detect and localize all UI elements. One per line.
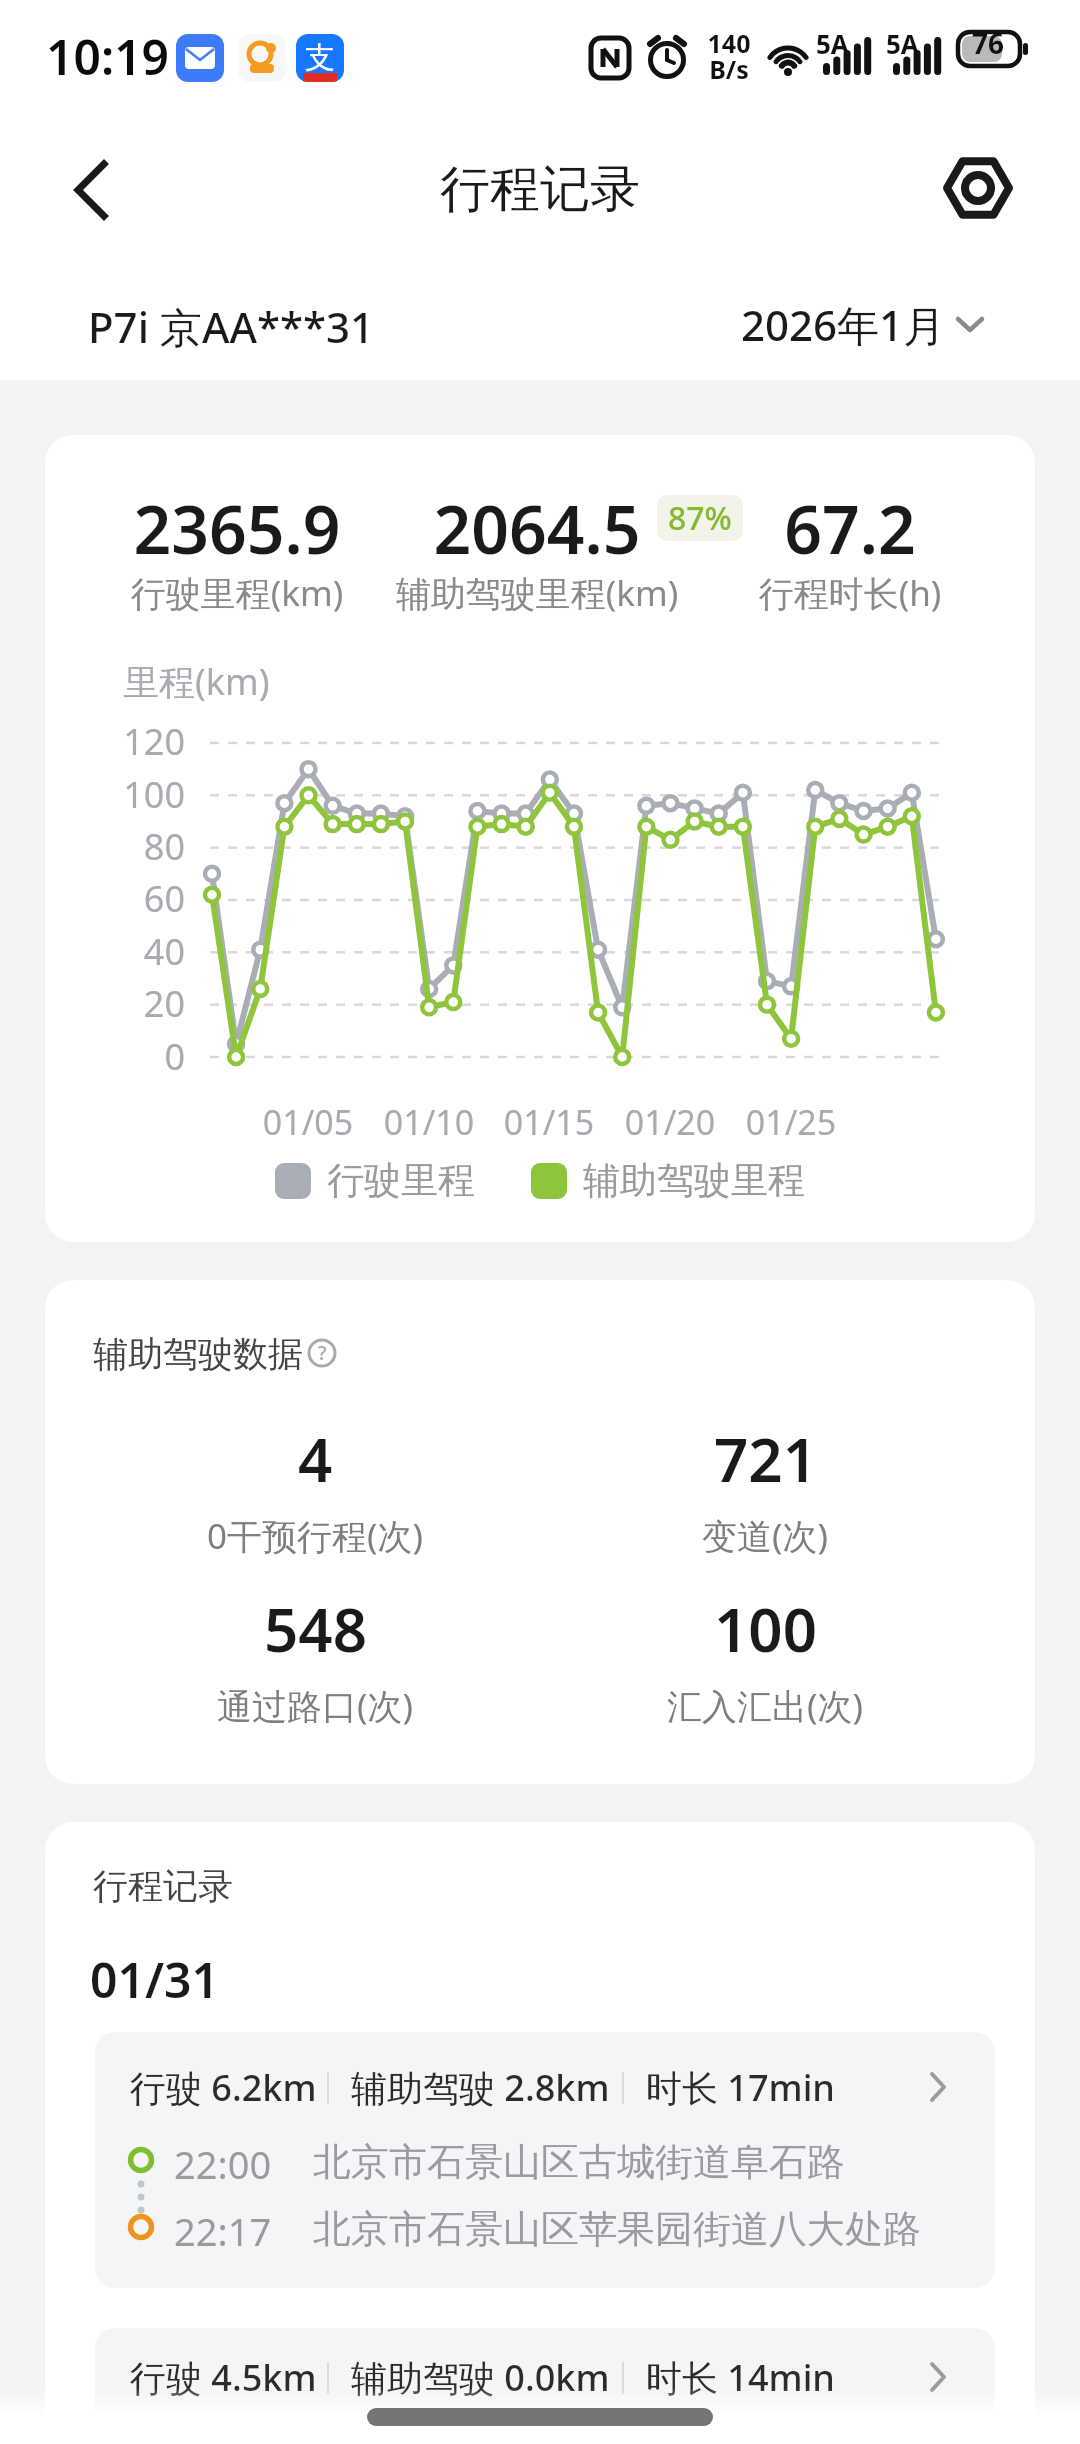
staticText: 87% [668, 496, 732, 540]
staticText: 行驶 6.2km [130, 2063, 317, 2112]
staticText: 5A [886, 26, 919, 61]
staticText: 0 [95, 1032, 185, 1081]
staticText: 行驶里程(km) [57, 569, 417, 617]
staticText: 北京市石景山区苹果园街道八大处路 [313, 2205, 921, 2253]
staticText: 01/25 [721, 1099, 861, 1145]
staticText: 辅助驾驶 2.8km [351, 2063, 610, 2112]
staticText: 01/10 [359, 1099, 499, 1145]
staticText: 行驶里程 [327, 1157, 475, 1204]
staticText: 80 [95, 822, 185, 871]
staticText: 721 [714, 1418, 817, 1500]
staticText: 20 [95, 979, 185, 1028]
staticText: 通过路口(次) [165, 1682, 465, 1730]
staticText: 120 [95, 717, 185, 766]
staticText: 行程记录 [93, 1864, 233, 1908]
staticText: 里程(km) [123, 657, 270, 706]
staticText: 76 [960, 24, 1016, 62]
staticText: 01/15 [479, 1099, 619, 1145]
button[interactable] [944, 154, 1012, 222]
staticText: 67.2 [700, 483, 1000, 573]
staticText: 辅助驾驶里程(km) [357, 569, 717, 617]
staticText: 汇入汇出(次) [615, 1682, 915, 1730]
staticText: 100 [95, 770, 185, 819]
staticText: 变道(次) [615, 1512, 915, 1560]
staticText: 22:17 [174, 2205, 272, 2257]
button[interactable]: ? [307, 1338, 337, 1368]
staticText: 时长 14min [646, 2353, 835, 2402]
staticText: 辅助驾驶里程 [583, 1157, 805, 1204]
staticText: 22:00 [174, 2138, 272, 2190]
staticText: 行程时长(h) [670, 569, 1030, 617]
staticText: 4 [298, 1418, 333, 1500]
staticText: 01/20 [600, 1099, 740, 1145]
staticText: P7i 京AA***31 [88, 298, 375, 355]
staticText: 2026年1月 [741, 296, 946, 353]
staticText: 行驶 4.5km [130, 2353, 317, 2402]
staticText: 辅助驾驶 0.0km [351, 2353, 610, 2402]
staticText: ? [318, 1340, 327, 1366]
staticText: 100 [714, 1588, 817, 1670]
staticText: 548 [264, 1588, 367, 1670]
button[interactable]: 2026年1月 [741, 296, 984, 353]
staticText: 支 [305, 39, 335, 77]
staticText: 01/31 [90, 1947, 219, 2012]
staticText: B/s [698, 52, 760, 86]
staticText: 10:19 [46, 24, 170, 89]
staticText: 辅助驾驶数据 [93, 1332, 303, 1376]
staticText: 5A [816, 26, 849, 61]
button[interactable]: 行驶 4.5km [95, 2328, 995, 2444]
staticText: 2064.5 [387, 483, 687, 573]
button[interactable]: 行驶 6.2km [95, 2032, 995, 2288]
button[interactable] [66, 158, 116, 222]
staticText: 2365.9 [87, 483, 387, 573]
staticText: 140 [698, 26, 760, 60]
staticText: 60 [95, 874, 185, 923]
staticText: 时长 17min [646, 2063, 835, 2112]
staticText: 40 [95, 927, 185, 976]
staticText: 行程记录 [0, 158, 1080, 221]
staticText: 01/05 [238, 1099, 378, 1145]
staticText: 北京市石景山区古城街道阜石路 [313, 2138, 845, 2186]
staticText: 0干预行程(次) [165, 1512, 465, 1560]
